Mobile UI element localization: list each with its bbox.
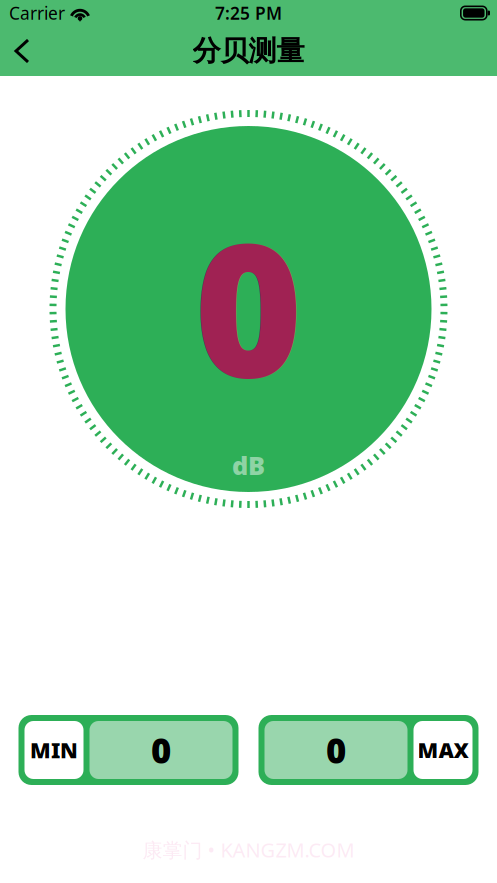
staticText: 康掌门 • KANGZM.COM	[142, 836, 354, 863]
button[interactable]: 0	[258, 715, 478, 785]
staticText: MIN	[30, 736, 78, 764]
staticText: MAX	[417, 736, 468, 764]
button[interactable]: MIN	[18, 715, 238, 785]
staticText: 0	[151, 727, 171, 773]
staticText: Carrier	[9, 1, 65, 24]
staticText: 0	[326, 727, 346, 773]
staticText: 7:25 PM	[215, 1, 282, 24]
staticText: 分贝测量	[192, 34, 304, 68]
button[interactable]: Back	[0, 26, 44, 76]
staticText: dB	[232, 448, 265, 482]
staticText: 0	[194, 182, 303, 428]
